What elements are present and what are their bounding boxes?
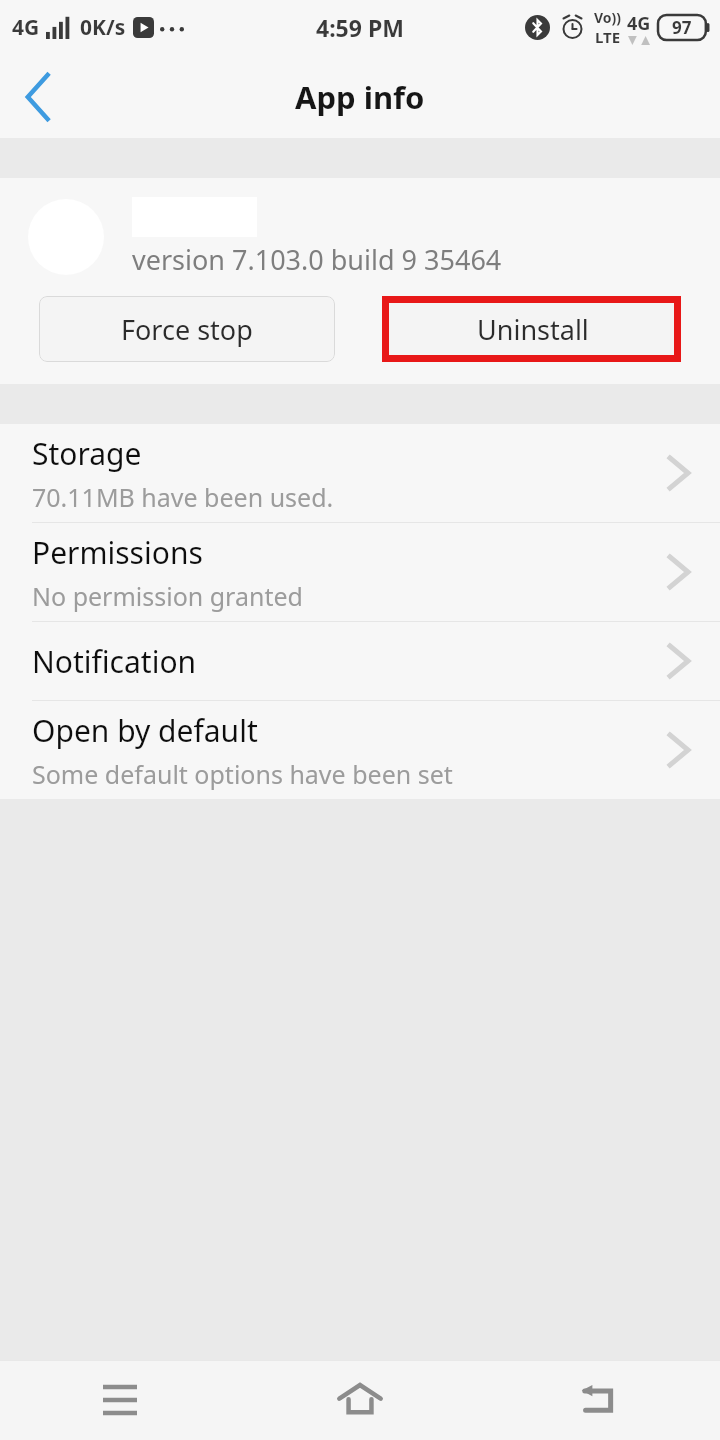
button[interactable]: Open by default — [0, 701, 720, 799]
button[interactable]: Notification — [0, 622, 720, 700]
staticText: 4:59 PM — [316, 12, 404, 43]
button[interactable]: Recents — [0, 1360, 240, 1440]
button[interactable]: Uninstall — [385, 296, 681, 362]
button[interactable]: Permissions — [0, 523, 720, 621]
staticText: Uninstall — [477, 311, 589, 348]
button[interactable]: Back — [0, 59, 76, 135]
button[interactable]: Force stop — [39, 296, 335, 362]
staticText: No permission granted — [32, 579, 303, 613]
staticText: 4G — [627, 11, 651, 36]
staticText: version 7.103.0 build 9 35464 — [132, 241, 502, 278]
staticText: 4G — [12, 13, 40, 42]
staticText: 70.11MB have been used. — [32, 480, 334, 514]
staticText: Some default options have been set — [32, 757, 453, 791]
staticText: Force stop — [121, 311, 253, 348]
staticText: 97 — [672, 16, 692, 39]
staticText: Notification — [32, 641, 197, 682]
staticText: App info — [295, 76, 425, 118]
button[interactable]: Home — [240, 1360, 480, 1440]
button[interactable]: Storage — [0, 424, 720, 522]
staticText: Open by default — [32, 710, 258, 751]
staticText: Permissions — [32, 532, 203, 573]
staticText: Storage — [32, 433, 142, 474]
button[interactable]: Back — [480, 1360, 720, 1440]
staticText: LTE — [595, 27, 621, 47]
staticText: Vo)) — [594, 8, 622, 27]
staticText: 0K/s — [80, 13, 126, 42]
